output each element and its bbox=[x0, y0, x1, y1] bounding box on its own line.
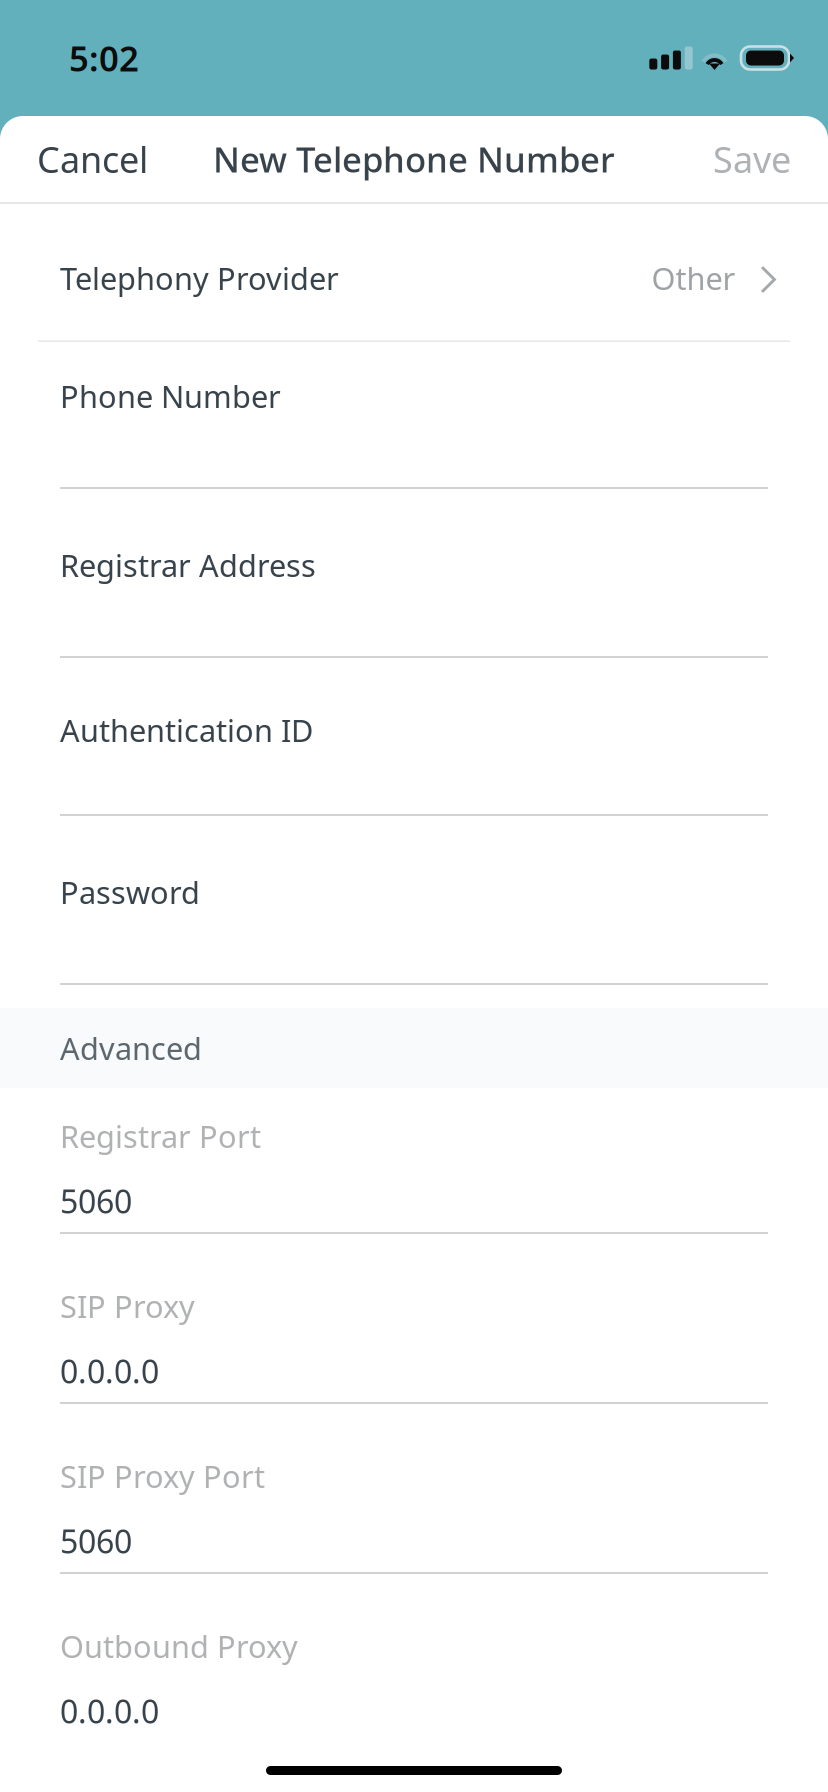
button[interactable]: Outbound Proxy bbox=[0, 1574, 828, 1744]
staticText: Cancel bbox=[37, 135, 148, 183]
staticText: 0.0.0.0 bbox=[60, 1690, 159, 1732]
button[interactable]: Authentication ID bbox=[0, 658, 828, 816]
button[interactable]: Telephony Provider bbox=[0, 204, 828, 342]
staticText: Telephony Provider bbox=[60, 258, 339, 298]
staticText: 5:02 bbox=[69, 35, 139, 81]
button[interactable]: SIP Proxy bbox=[0, 1234, 828, 1404]
staticText: 0.0.0.0 bbox=[60, 1350, 159, 1392]
button[interactable]: Phone Number bbox=[0, 342, 828, 489]
staticText: Registrar Port bbox=[60, 1116, 261, 1156]
staticText: Advanced bbox=[60, 1028, 202, 1068]
staticText: Registrar Address bbox=[60, 545, 316, 585]
staticText: Other bbox=[651, 258, 735, 298]
button[interactable]: SIP Proxy Port bbox=[0, 1404, 828, 1574]
staticText: 5060 bbox=[60, 1520, 132, 1562]
button[interactable]: Registrar Address bbox=[0, 489, 828, 658]
button[interactable]: Save bbox=[699, 119, 805, 199]
staticText: 5060 bbox=[60, 1180, 132, 1222]
button[interactable]: Registrar Port bbox=[0, 1088, 828, 1234]
staticText: Password bbox=[60, 872, 200, 912]
staticText: Phone Number bbox=[60, 376, 281, 416]
staticText: Outbound Proxy bbox=[60, 1626, 298, 1666]
staticText: Save bbox=[713, 135, 791, 183]
button[interactable]: Cancel bbox=[23, 119, 162, 199]
button[interactable]: Password bbox=[0, 816, 828, 985]
staticText: New Telephone Number bbox=[213, 136, 615, 182]
staticText: SIP Proxy Port bbox=[60, 1456, 265, 1496]
staticText: SIP Proxy bbox=[60, 1286, 195, 1326]
staticText: Authentication ID bbox=[60, 710, 313, 750]
